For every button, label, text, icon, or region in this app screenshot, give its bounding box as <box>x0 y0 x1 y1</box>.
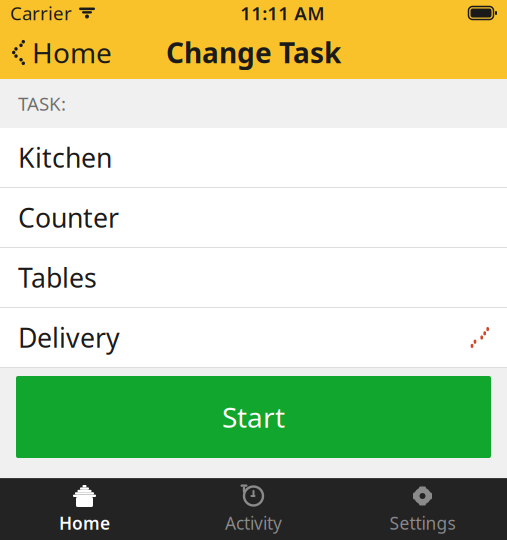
button[interactable]: Kitchen <box>0 128 507 188</box>
staticText: Tables <box>18 260 97 295</box>
staticText: Settings <box>389 511 455 534</box>
staticText: Home <box>59 511 110 534</box>
staticText: Start <box>222 398 285 436</box>
staticText: Home <box>32 34 112 71</box>
staticText: TASK: <box>18 91 66 116</box>
button[interactable]: Start <box>16 376 491 458</box>
button[interactable]: Activity <box>169 479 338 540</box>
staticText: Delivery <box>18 320 120 355</box>
button[interactable]: Tables <box>0 248 507 308</box>
staticText: Counter <box>18 200 119 235</box>
button[interactable]: Settings <box>338 479 507 540</box>
button[interactable]: Delivery <box>0 308 507 368</box>
button[interactable]: Home <box>0 479 169 540</box>
staticText: Change Task <box>166 34 341 71</box>
button[interactable]: Home <box>0 29 124 75</box>
staticText: 11:11 AM <box>240 1 324 25</box>
staticText: Carrier <box>10 1 72 25</box>
button[interactable]: Counter <box>0 188 507 248</box>
staticText: Kitchen <box>18 140 112 175</box>
staticText: Activity <box>225 511 282 534</box>
